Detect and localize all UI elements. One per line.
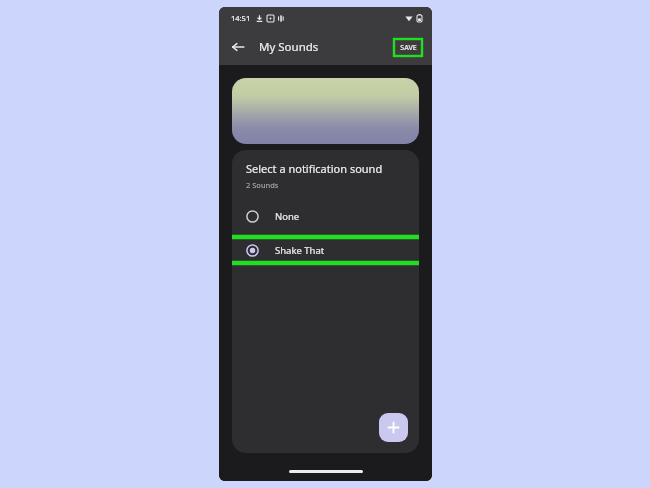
button[interactable]: None [232,203,419,229]
staticText: 2 Sounds [246,180,279,190]
button[interactable] [232,78,419,144]
button[interactable]: SAVE [394,39,422,56]
button[interactable]: Back [225,34,251,60]
button[interactable]: Add sound [379,413,408,442]
staticText: None [275,210,300,223]
button[interactable]: Shake That [232,237,419,263]
staticText: Shake That [275,244,325,257]
staticText: Select a notification sound [246,161,383,176]
staticText: My Sounds [259,39,319,55]
staticText: SAVE [400,43,417,53]
staticText: 14:51 [231,13,251,23]
